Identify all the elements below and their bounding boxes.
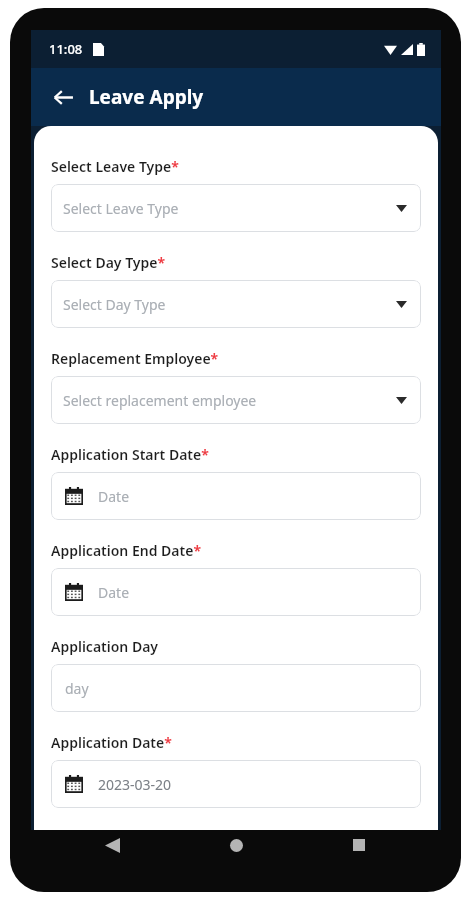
staticText: Leave Apply [89, 84, 204, 110]
staticText: 11:08 [49, 40, 83, 58]
staticText: Select Leave Type [63, 199, 179, 218]
button[interactable]: Select replacement employee [51, 376, 421, 424]
staticText: Application Start Date* [51, 445, 209, 464]
button[interactable]: Back [43, 77, 83, 117]
button[interactable]: Date [51, 472, 421, 520]
button[interactable]: Home [214, 823, 258, 867]
button[interactable]: Select Leave Type [51, 184, 421, 232]
staticText: Application Date* [51, 733, 172, 752]
staticText: Select Day Type [63, 295, 166, 314]
button[interactable]: Date [51, 568, 421, 616]
staticText: Select Day Type* [51, 253, 166, 272]
staticText: Replacement Employee* [51, 349, 219, 368]
staticText: Date [98, 487, 130, 506]
button[interactable]: Recent apps [337, 823, 381, 867]
button[interactable]: Select Day Type [51, 280, 421, 328]
staticText: Select replacement employee [63, 391, 257, 410]
button[interactable]: Back [90, 823, 134, 867]
staticText: Application End Date* [51, 541, 201, 560]
button[interactable]: day [51, 664, 421, 712]
button[interactable]: 2023-03-20 [51, 760, 421, 808]
staticText: Select Leave Type* [51, 157, 179, 176]
staticText: 2023-03-20 [98, 775, 172, 794]
staticText: Application Day [51, 637, 159, 656]
staticText: day [65, 679, 89, 698]
staticText: Date [98, 583, 130, 602]
